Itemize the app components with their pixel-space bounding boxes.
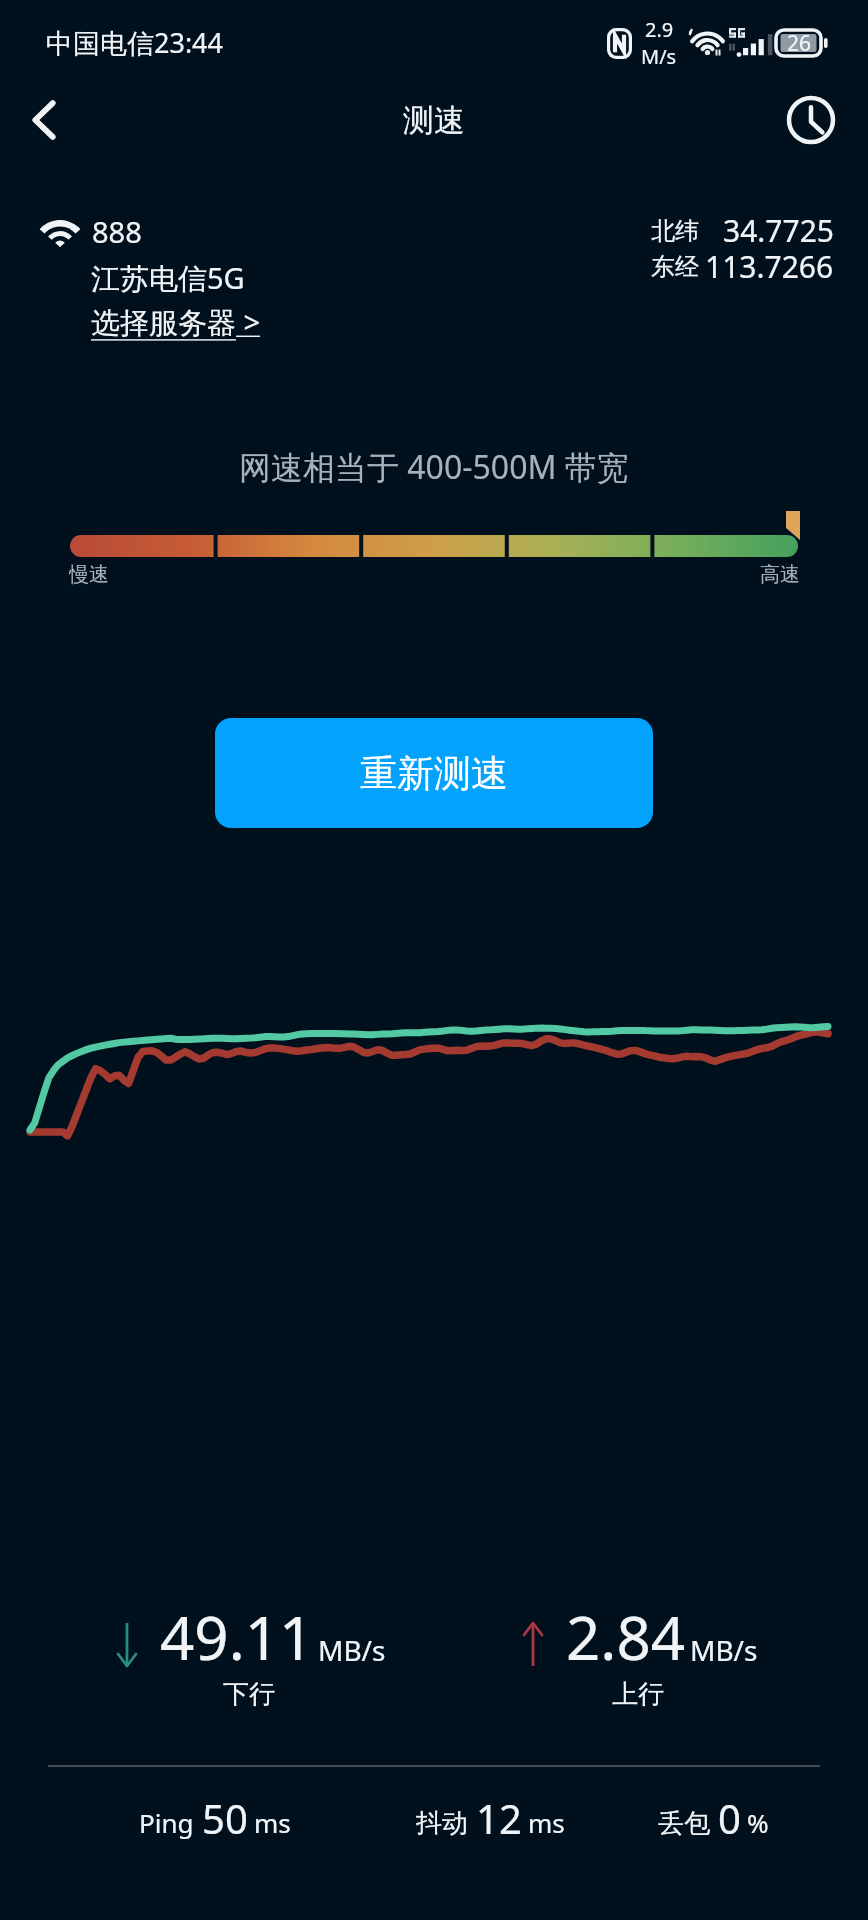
button[interactable]: History: [776, 85, 846, 155]
staticText: %: [747, 1805, 769, 1840]
staticText: 0: [718, 1791, 741, 1845]
staticText: 重新测速: [360, 750, 508, 797]
staticText: 选择服务器 >: [91, 302, 261, 342]
staticText: 上行: [612, 1678, 664, 1711]
staticText: 50: [202, 1791, 248, 1845]
staticText: 888: [92, 212, 142, 251]
staticText: ms: [254, 1805, 291, 1840]
staticText: 下行: [223, 1678, 275, 1711]
staticText: 2.84: [566, 1596, 686, 1678]
staticText: 江苏电信5G: [91, 258, 245, 298]
staticText: ms: [528, 1805, 565, 1840]
staticText: 2.9: [645, 16, 674, 43]
staticText: MB/s: [318, 1631, 386, 1669]
staticText: 26: [787, 29, 812, 58]
staticText: 抖动: [416, 1807, 468, 1840]
staticText: 34.7725: [723, 210, 834, 251]
staticText: 测速: [403, 101, 465, 140]
staticText: 丢包: [658, 1807, 710, 1840]
staticText: 49.11: [160, 1596, 314, 1678]
staticText: 东经: [651, 252, 699, 282]
staticText: 12: [476, 1791, 522, 1845]
staticText: 北纬: [651, 216, 699, 246]
staticText: 113.7266: [705, 246, 834, 287]
staticText: 慢速: [69, 562, 109, 587]
button[interactable]: Back: [9, 85, 79, 155]
staticText: M/s: [641, 43, 677, 70]
button[interactable]: 重新测速: [215, 718, 653, 828]
button[interactable]: 选择服务器 >: [91, 302, 261, 342]
staticText: MB/s: [690, 1631, 758, 1669]
staticText: 高速: [760, 562, 800, 587]
staticText: 中国电信23:44: [46, 24, 224, 61]
staticText: 网速相当于 400-500M 带宽: [239, 445, 629, 489]
staticText: Ping: [139, 1805, 194, 1840]
